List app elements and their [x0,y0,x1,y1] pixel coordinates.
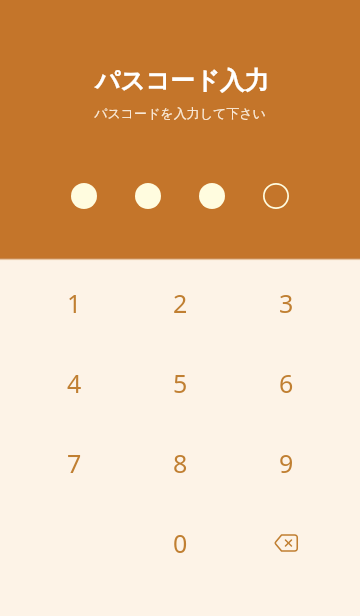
button[interactable]: 5 [127,343,233,423]
button[interactable]: 9 [233,423,339,503]
button[interactable]: 6 [233,343,339,423]
staticText: 8 [173,446,188,480]
staticText: 4 [67,366,82,400]
staticText: 2 [173,286,188,320]
staticText: 3 [279,286,294,320]
button[interactable]: 7 [21,423,127,503]
staticText: パスコードを入力して下さい [94,105,266,121]
staticText: 9 [279,446,294,480]
button[interactable]: 8 [127,423,233,503]
button[interactable]: 0 [127,503,233,583]
staticText: 6 [279,366,294,400]
staticText: 7 [67,446,82,480]
staticText: 0 [173,526,188,560]
button[interactable]: 4 [21,343,127,423]
button[interactable]: 1 [21,263,127,343]
button[interactable]: Delete [233,503,339,583]
staticText: パスコード入力 [95,65,269,96]
staticText: 5 [173,366,188,400]
staticText: 1 [67,286,82,320]
button[interactable]: 3 [233,263,339,343]
button[interactable]: 2 [127,263,233,343]
